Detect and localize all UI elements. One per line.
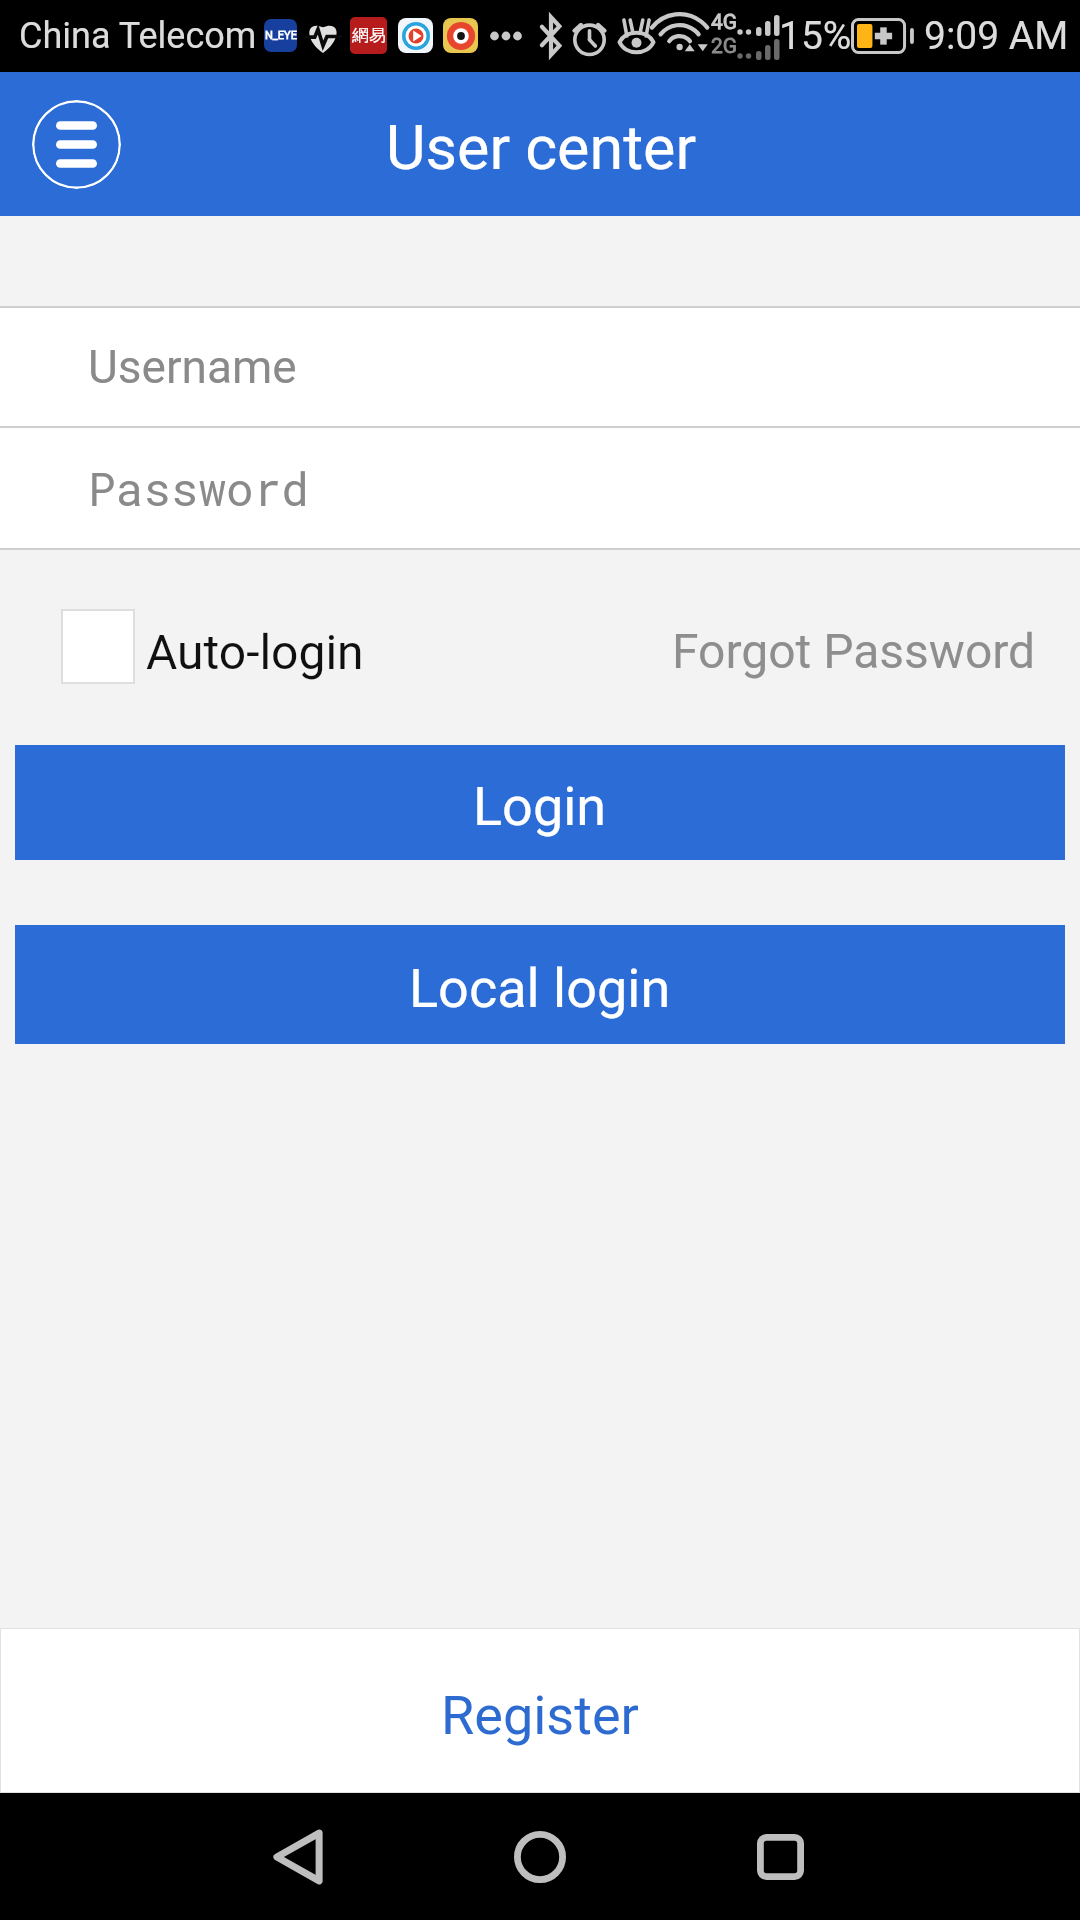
button[interactable]: Recent apps (720, 1793, 840, 1920)
button[interactable]: Local login (15, 925, 1065, 1044)
staticText: Forgot Password (672, 623, 1036, 679)
staticText: 9:09 AM (924, 13, 1069, 59)
staticText: 2G (711, 34, 738, 59)
button[interactable]: Username (0, 308, 1080, 426)
staticText: N_EYE (265, 29, 297, 42)
button[interactable]: Auto-login (61, 614, 368, 689)
button[interactable]: Open navigation menu (32, 100, 121, 189)
staticText: Register (441, 1684, 639, 1747)
staticText: 15% (779, 13, 852, 59)
staticText: User center (386, 112, 697, 183)
staticText: China Telecom (19, 15, 257, 57)
staticText: 網易 (352, 25, 386, 46)
button[interactable]: Password (0, 428, 1080, 548)
button[interactable]: Back (238, 1793, 358, 1920)
staticText: Password (88, 458, 309, 519)
button[interactable]: Forgot Password (672, 623, 1036, 679)
staticText: 4G (711, 10, 738, 35)
button[interactable]: Register (0, 1628, 1080, 1793)
staticText: Username (88, 340, 297, 394)
button[interactable]: Home (480, 1793, 600, 1920)
staticText: Local login (409, 957, 671, 1020)
staticText: Auto-login (146, 624, 364, 680)
button[interactable]: Login (15, 745, 1065, 860)
staticText: Login (473, 775, 607, 838)
